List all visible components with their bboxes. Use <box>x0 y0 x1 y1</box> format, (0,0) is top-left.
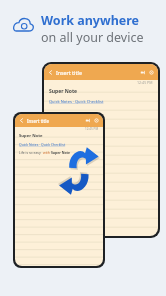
other: More options <box>94 118 99 123</box>
staticText: with <box>43 150 51 155</box>
other: Cloud sync <box>11 15 35 35</box>
button[interactable]: Back <box>13 112 105 268</box>
staticText: Insert title <box>56 69 82 76</box>
button[interactable]: Back <box>42 62 160 238</box>
staticText: 12:45 PM <box>85 127 99 131</box>
button[interactable]: Back <box>44 64 158 80</box>
staticText: Super Note <box>51 150 71 155</box>
other: Back <box>19 118 24 123</box>
staticText: Insert title <box>27 118 49 124</box>
other: More options <box>149 70 154 75</box>
staticText: 12:45 PM <box>137 80 153 85</box>
other: Pin note <box>140 70 145 75</box>
staticText: Work anywhere <box>41 12 140 29</box>
other: Pin note <box>85 118 90 123</box>
staticText: on all your device <box>41 29 144 46</box>
other: Back <box>48 70 53 75</box>
staticText: Super Note <box>49 88 78 95</box>
staticText: Quick Notes · Quick Checklist <box>49 99 104 104</box>
button[interactable]: Cloud sync <box>11 12 156 46</box>
button[interactable]: Sync between devices <box>56 144 100 198</box>
button[interactable]: Back <box>15 114 103 127</box>
staticText: Life is so easy <box>19 150 43 155</box>
staticText: Super Note <box>19 133 43 139</box>
staticText: Quick Notes · Quick Checklist <box>19 142 66 147</box>
